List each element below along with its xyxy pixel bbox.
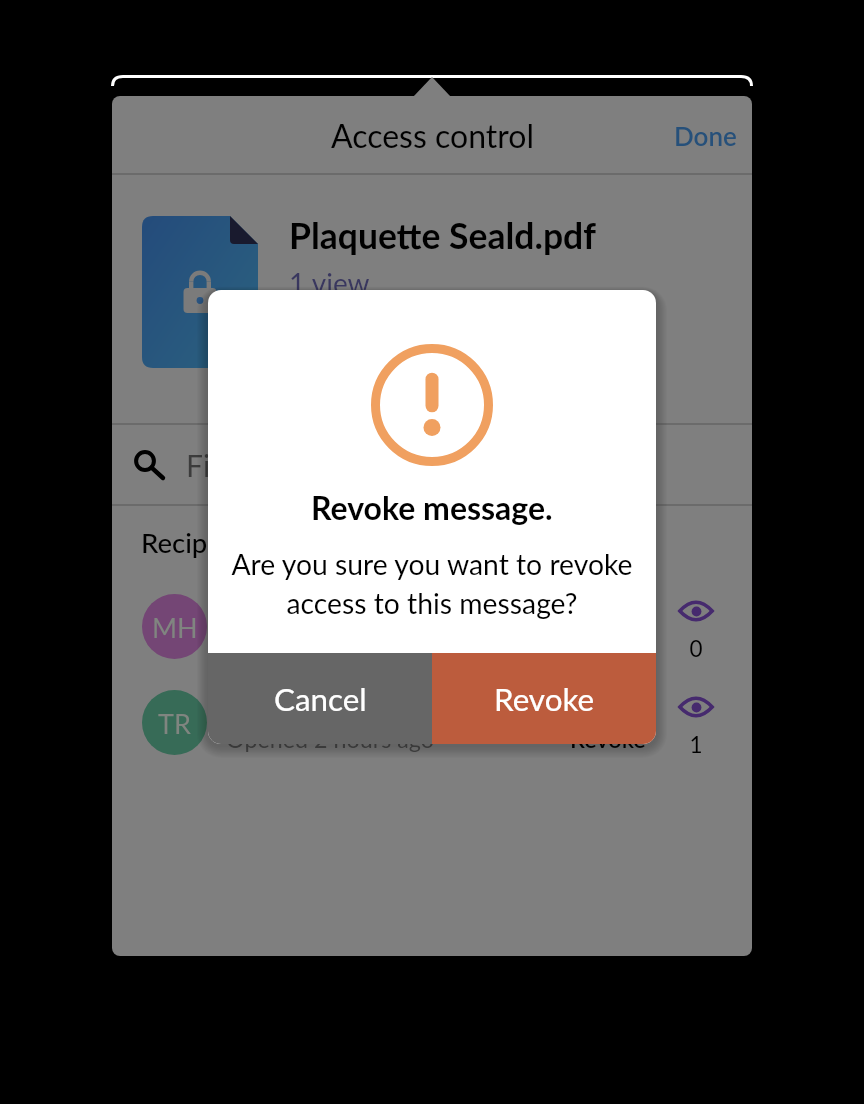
staticText: Revoke: [494, 680, 595, 718]
button[interactable]: Cancel: [208, 653, 432, 744]
staticText: 1 view: [289, 266, 370, 300]
staticText: manon.h@seald.io: [226, 595, 425, 625]
staticText: Access control: [331, 116, 534, 154]
staticText: Cancel: [274, 680, 367, 718]
other: Search: [130, 436, 186, 492]
staticText: Recipients: [141, 526, 266, 559]
button[interactable]: Done: [659, 102, 752, 169]
button[interactable]: Revoke: [570, 725, 646, 753]
staticText: 0: [668, 635, 724, 662]
other: Views: [678, 599, 714, 623]
other: Views: [678, 695, 714, 719]
staticText: timothee.r@seald.io: [226, 691, 444, 721]
staticText: 1: [668, 731, 724, 758]
staticText: Find a recipient: [186, 447, 389, 483]
button[interactable]: Revoke: [432, 653, 656, 744]
staticText: Revoke message.: [311, 488, 553, 526]
staticText: TR: [158, 707, 191, 739]
staticText: Plaquette Seald.pdf: [289, 214, 596, 257]
button[interactable]: TR: [112, 674, 752, 770]
staticText: MH: [152, 611, 198, 643]
button[interactable]: Search: [112, 425, 752, 504]
staticText: Not opened yet: [226, 629, 386, 657]
staticText: Opened 2 hours ago: [226, 725, 434, 753]
button[interactable]: Revoke: [570, 629, 646, 657]
staticText: Done: [674, 120, 737, 151]
staticText: Are you sure you want to revoke access t…: [216, 547, 648, 620]
button[interactable]: MH: [112, 578, 752, 674]
